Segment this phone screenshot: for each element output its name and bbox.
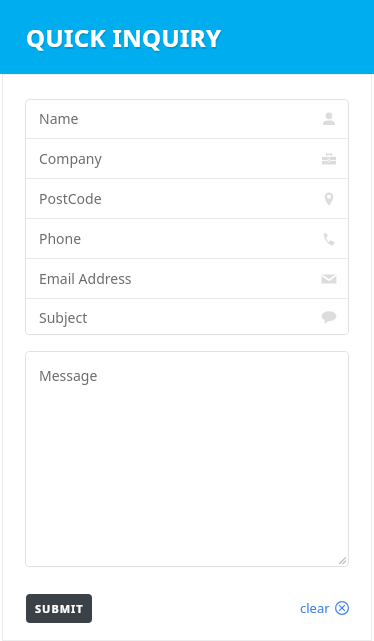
button[interactable]: Name bbox=[25, 99, 349, 138]
staticText: clear bbox=[300, 599, 330, 617]
button[interactable]: SUBMIT bbox=[26, 594, 92, 623]
button[interactable]: Message bbox=[25, 351, 349, 567]
staticText: PostCode bbox=[39, 189, 102, 208]
staticText: Message bbox=[39, 366, 98, 385]
button[interactable]: PostCode bbox=[25, 179, 349, 218]
staticText: Company bbox=[39, 149, 102, 168]
staticText: QUICK INQUIRY bbox=[26, 21, 222, 54]
button[interactable]: Phone bbox=[25, 219, 349, 258]
button[interactable]: Email Address bbox=[25, 259, 349, 298]
staticText: Subject bbox=[39, 308, 88, 327]
staticText: Phone bbox=[39, 229, 82, 248]
button[interactable]: Company bbox=[25, 139, 349, 178]
staticText: QUICK INQUIRY bbox=[27, 23, 223, 56]
other: Clear form bbox=[335, 601, 349, 615]
staticText: Name bbox=[39, 109, 79, 128]
button[interactable]: clear bbox=[300, 599, 349, 617]
staticText: Email Address bbox=[39, 269, 132, 288]
button[interactable]: Subject bbox=[25, 299, 349, 335]
staticText: SUBMIT bbox=[35, 601, 84, 616]
